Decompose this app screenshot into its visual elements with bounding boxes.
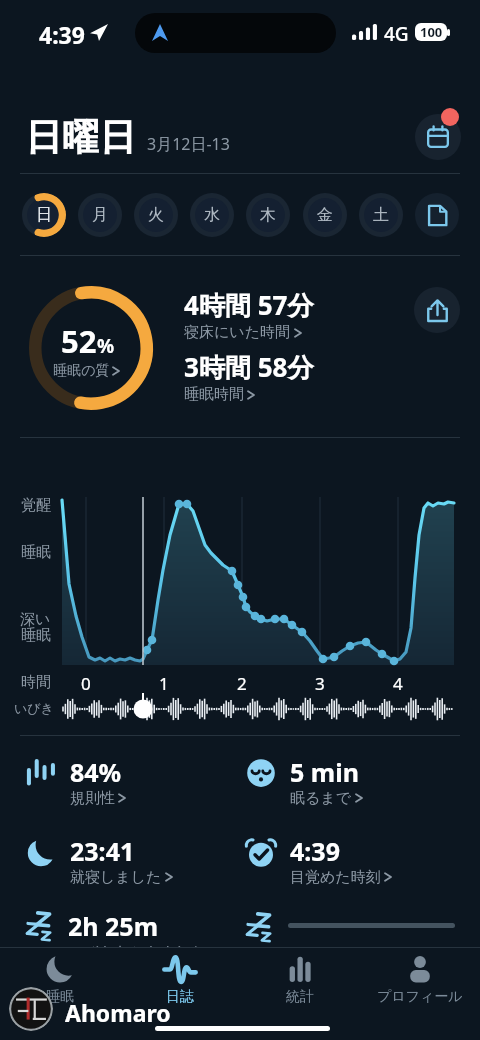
- staticText: 4: [393, 672, 403, 695]
- staticText: 2h 25m: [68, 909, 159, 943]
- button[interactable]: 52: [53, 320, 122, 380]
- staticText: 木: [260, 205, 276, 225]
- button[interactable]: 84%: [25, 757, 240, 809]
- staticText: 睡眠時間: [184, 385, 244, 404]
- staticText: プロフィール: [377, 988, 463, 1006]
- staticText: 52: [61, 320, 97, 362]
- staticText: 5 min: [290, 755, 359, 789]
- staticText: 深い: [20, 610, 51, 629]
- staticText: 4:39: [39, 19, 85, 50]
- button[interactable]: 水: [190, 193, 234, 237]
- staticText: いびき: [14, 700, 54, 716]
- button[interactable]: 日誌: [120, 948, 240, 1008]
- staticText: 月: [92, 205, 108, 225]
- staticText: 時間: [21, 673, 51, 692]
- button[interactable]: Share: [414, 287, 460, 333]
- button[interactable]: 23:41: [25, 836, 240, 888]
- staticText: 土: [373, 205, 389, 225]
- staticText: 眠るまで: [290, 789, 352, 807]
- staticText: いびきをかきました: [68, 943, 207, 961]
- staticText: 3時間 58分: [184, 349, 314, 385]
- button[interactable]: 木: [246, 193, 290, 237]
- staticText: 84%: [70, 755, 122, 789]
- staticText: 水: [204, 205, 220, 225]
- button[interactable]: 2h 25m: [23, 911, 238, 963]
- staticText: 1: [159, 672, 169, 695]
- button[interactable]: プロフィール: [360, 948, 480, 1008]
- staticText: 寝床にいた時間: [184, 323, 291, 342]
- button[interactable]: 土: [359, 193, 403, 237]
- button[interactable]: 日: [22, 193, 66, 237]
- staticText: 100: [420, 23, 443, 41]
- button[interactable]: 月: [78, 193, 122, 237]
- staticText: 4G: [384, 21, 409, 47]
- staticText: 規則性: [70, 789, 115, 807]
- button[interactable]: 睡眠: [0, 948, 120, 1008]
- button[interactable]: 統計: [240, 948, 360, 1008]
- staticText: 3月12日-13: [147, 133, 230, 155]
- button[interactable]: [243, 905, 458, 947]
- staticText: 4:39: [290, 834, 340, 868]
- staticText: 0: [81, 672, 91, 695]
- staticText: 統計: [286, 988, 314, 1006]
- button[interactable]: 5 min: [245, 757, 460, 809]
- staticText: 睡眠: [21, 543, 51, 562]
- button[interactable]: Notes: [415, 193, 459, 237]
- button[interactable]: 火: [134, 193, 178, 237]
- staticText: %: [97, 333, 115, 359]
- staticText: 覚醒: [21, 496, 51, 515]
- staticText: 就寝しました: [70, 868, 162, 886]
- staticText: 金: [317, 205, 333, 225]
- staticText: 23:41: [70, 834, 135, 868]
- staticText: Ahomaro: [65, 997, 171, 1028]
- staticText: 日: [36, 205, 52, 225]
- staticText: 4時間 57分: [184, 287, 314, 323]
- staticText: 2: [237, 672, 247, 695]
- staticText: 日誌: [166, 988, 194, 1006]
- staticText: 目覚めた時刻: [290, 868, 381, 886]
- staticText: 睡眠: [21, 626, 51, 645]
- staticText: 日曜日: [25, 114, 136, 161]
- button[interactable]: 金: [303, 193, 347, 237]
- button[interactable]: Calendar: [415, 114, 461, 160]
- staticText: 3: [315, 672, 325, 695]
- staticText: 火: [148, 205, 164, 225]
- button[interactable]: 4時間 57分: [184, 287, 314, 342]
- staticText: 睡眠: [46, 988, 74, 1006]
- button[interactable]: 3時間 58分: [184, 349, 314, 404]
- button[interactable]: 4:39: [245, 836, 460, 888]
- staticText: 睡眠の質: [53, 362, 110, 380]
